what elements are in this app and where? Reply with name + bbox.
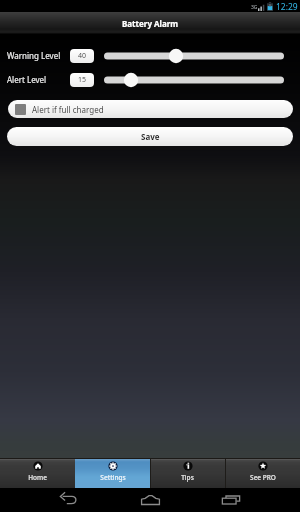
staticText: 40	[78, 51, 87, 61]
button[interactable]: Back	[46, 488, 90, 512]
staticText: Tips	[181, 473, 194, 482]
staticText: Alert if full charged	[32, 104, 104, 115]
button[interactable]: Home	[128, 488, 172, 512]
staticText: Save	[141, 131, 160, 142]
staticText: Settings	[100, 473, 126, 482]
button[interactable]: See PRO	[225, 459, 300, 488]
button[interactable]: Home	[0, 459, 75, 488]
staticText: 15	[78, 75, 87, 85]
button[interactable]	[97, 72, 291, 88]
button[interactable]: Tips	[150, 459, 225, 488]
staticText: Alert Level	[7, 74, 47, 85]
staticText: 12:29	[276, 1, 298, 13]
button[interactable]: Settings	[75, 459, 150, 488]
staticText: 3G	[251, 4, 258, 11]
button[interactable]: Alert if full charged	[8, 100, 293, 118]
button[interactable]: Save	[7, 127, 293, 146]
button[interactable]: 40	[70, 49, 94, 63]
button[interactable]: 15	[70, 73, 94, 87]
staticText: See PRO	[250, 473, 276, 482]
button[interactable]: Recent apps	[209, 488, 253, 512]
button[interactable]	[97, 48, 291, 64]
staticText: Battery Alarm	[122, 18, 179, 29]
staticText: Home	[28, 473, 47, 482]
staticText: Warning Level	[7, 50, 61, 61]
